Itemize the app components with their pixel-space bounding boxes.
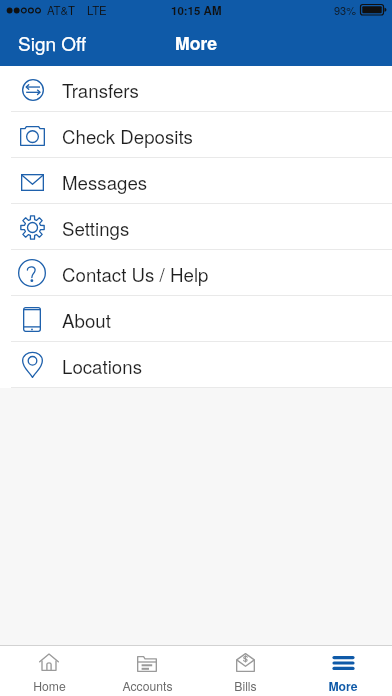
button[interactable]: Messages [0, 158, 392, 204]
staticText: Contact Us / Help [62, 261, 209, 288]
staticText: 93% [334, 2, 357, 18]
button[interactable]: More [294, 646, 392, 696]
button[interactable]: Locations [0, 342, 392, 388]
staticText: Accounts [122, 677, 173, 694]
staticText: LTE [87, 2, 107, 18]
staticText: Locations [62, 353, 142, 380]
button[interactable]: Home [0, 646, 98, 696]
button[interactable]: Transfers [0, 66, 392, 112]
staticText: Sign Off [18, 29, 87, 56]
staticText: About [62, 307, 111, 334]
staticText: Home [33, 677, 66, 694]
button[interactable]: Contact Us / Help [0, 250, 392, 296]
button[interactable]: Check Deposits [0, 112, 392, 158]
staticText: Bills [234, 677, 257, 694]
button[interactable]: Bills [196, 646, 294, 696]
button[interactable]: About [0, 296, 392, 342]
button[interactable]: Accounts [98, 646, 196, 696]
staticText: 10:15 AM [171, 2, 222, 18]
staticText: Transfers [62, 77, 139, 104]
button[interactable]: Settings [0, 204, 392, 250]
staticText: More [328, 677, 358, 694]
staticText: Check Deposits [62, 123, 193, 150]
staticText: Settings [62, 215, 130, 242]
staticText: Messages [62, 169, 148, 196]
staticText: AT&T [47, 2, 76, 18]
staticText: More [175, 30, 218, 55]
button[interactable]: Sign Off [0, 20, 392, 66]
